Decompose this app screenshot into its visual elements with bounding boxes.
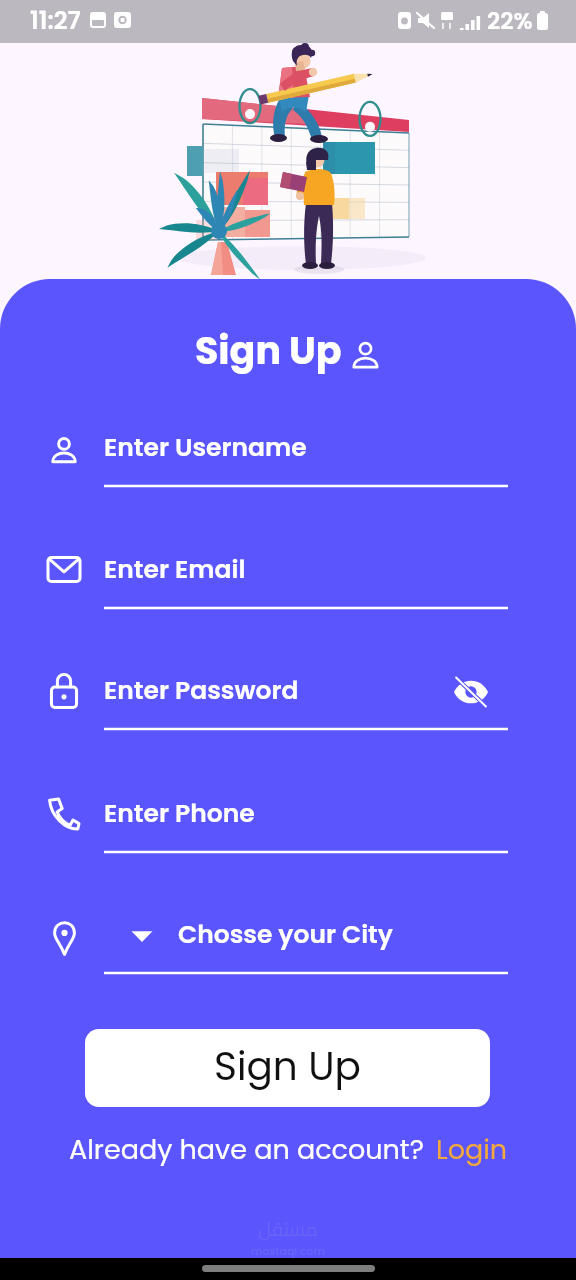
button[interactable]: Enter Password — [104, 673, 299, 708]
staticText: Sign Up — [214, 1039, 361, 1094]
button[interactable]: Chosse your City — [178, 917, 393, 952]
staticText: 22% — [487, 5, 533, 37]
button[interactable]: Enter Email — [104, 552, 246, 587]
staticText: Enter Password — [104, 673, 299, 708]
staticText: مستقل — [258, 1211, 318, 1247]
staticText: Sign Up — [195, 324, 342, 377]
staticText: Enter Username — [104, 430, 307, 465]
button[interactable]: Enter Phone — [104, 796, 255, 831]
staticText: Login — [436, 1131, 508, 1169]
button[interactable]: Enter Username — [104, 430, 307, 465]
staticText: Enter Email — [104, 552, 246, 587]
staticText: Already have an account? — [69, 1131, 424, 1169]
staticText: mostaql.com — [251, 1243, 325, 1258]
other: Profile — [352, 340, 380, 368]
staticText: 11:27 — [30, 4, 81, 38]
staticText: Chosse your City — [178, 917, 393, 952]
staticText: Enter Phone — [104, 796, 255, 831]
button[interactable]: Login — [436, 1131, 508, 1169]
button[interactable]: Sign Up — [85, 1029, 490, 1107]
